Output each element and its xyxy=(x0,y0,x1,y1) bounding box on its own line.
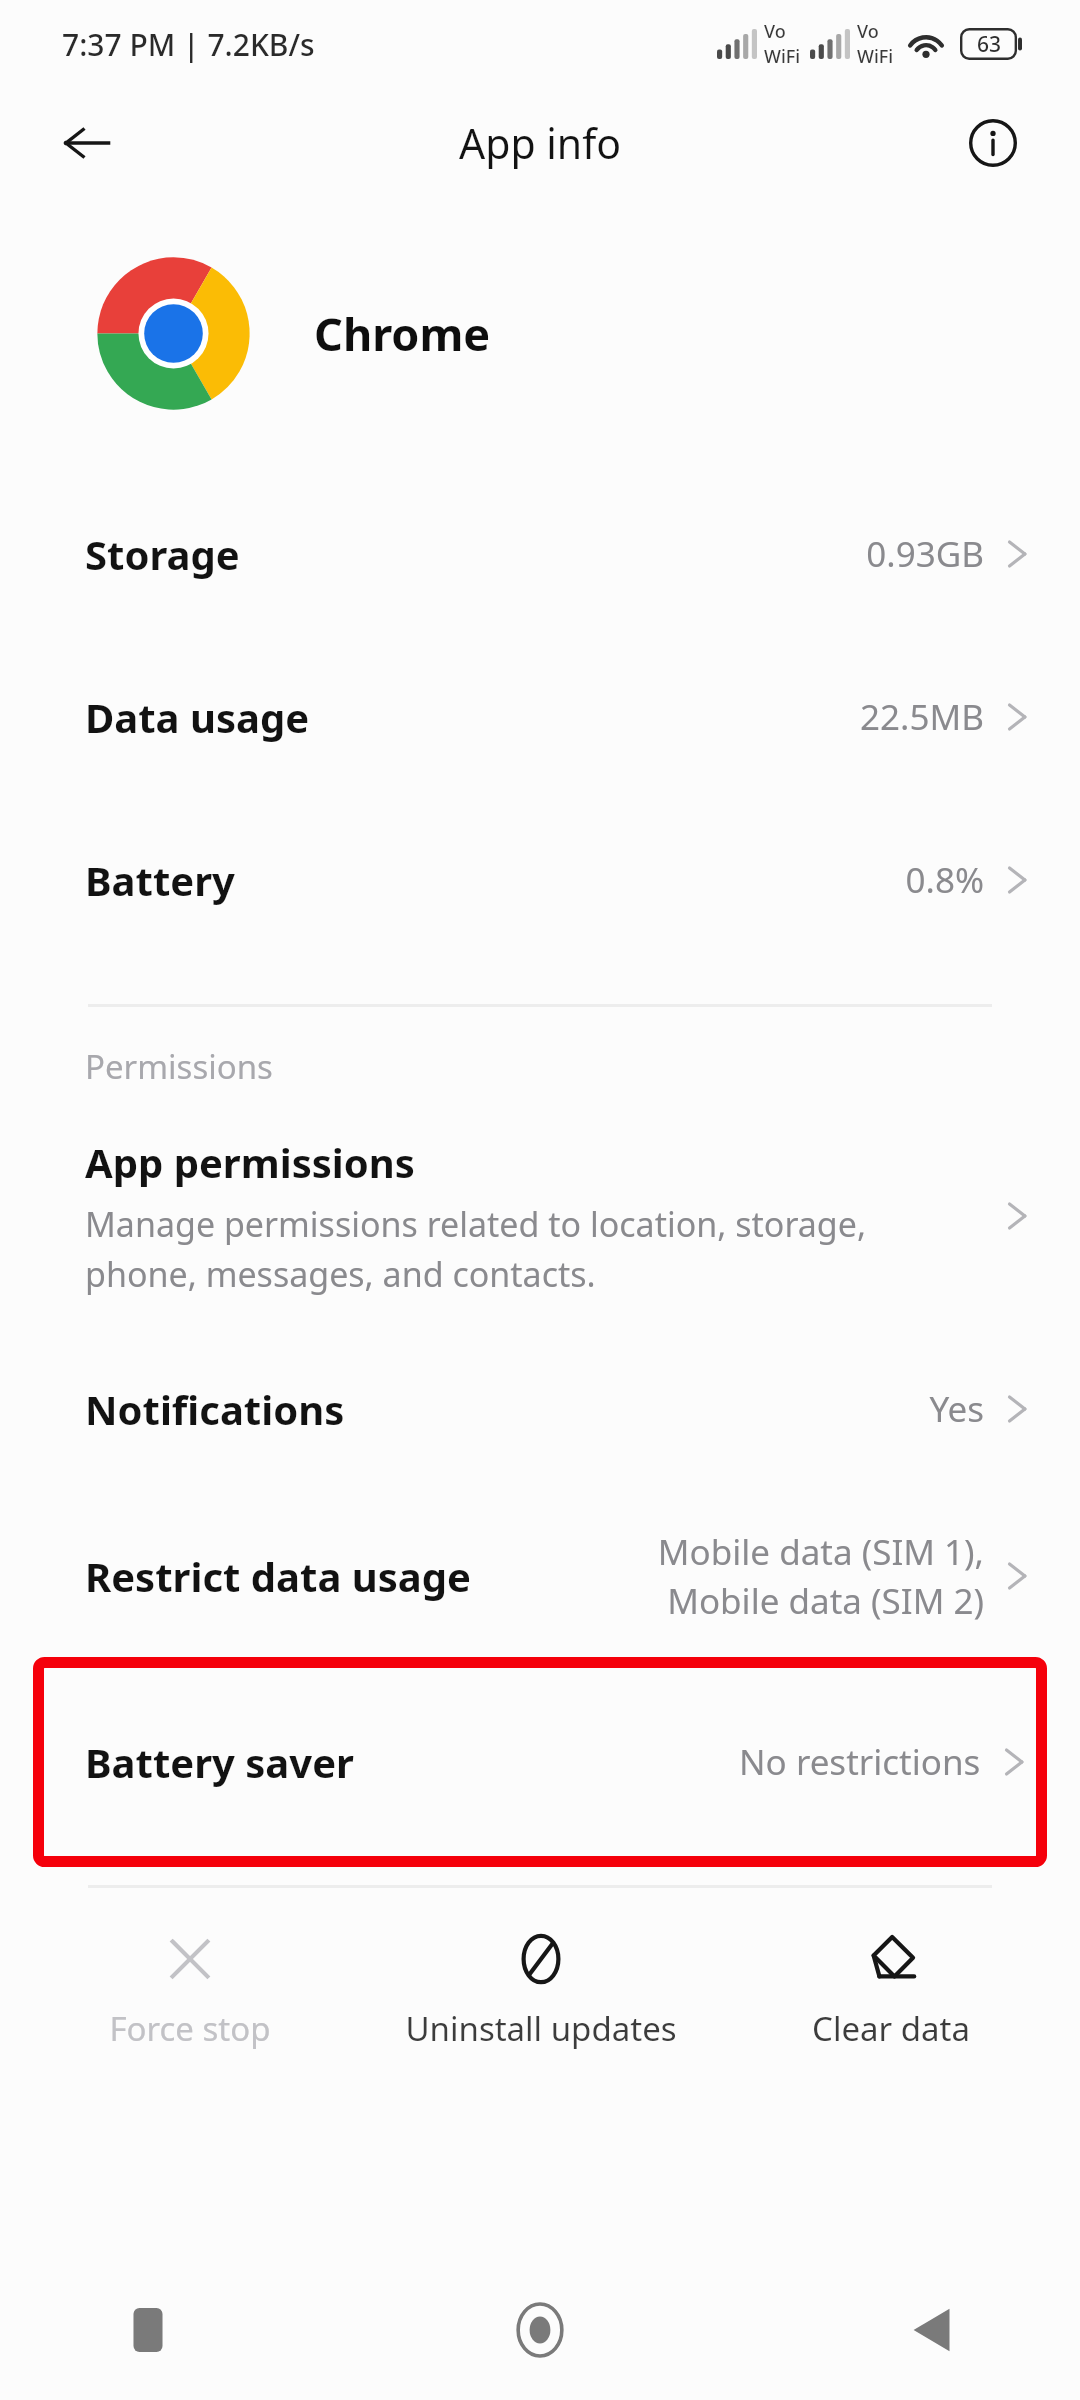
staticText: Clear data xyxy=(812,2006,970,2051)
staticText: Battery saver xyxy=(85,1735,354,1789)
staticText: Data usage xyxy=(85,690,310,744)
button[interactable]: Storage xyxy=(0,472,1080,635)
staticText: Uninstall updates xyxy=(405,2006,677,2051)
button[interactable]: Force stop xyxy=(36,1924,344,2057)
button[interactable]: Uninstall updates xyxy=(344,1924,737,2057)
staticText: Storage xyxy=(85,527,240,581)
staticText: App info xyxy=(459,115,622,171)
button[interactable]: Data usage xyxy=(0,635,1080,798)
button[interactable]: Home xyxy=(492,2282,588,2378)
staticText: 63 xyxy=(977,30,1002,59)
button[interactable]: Battery saver xyxy=(33,1657,1047,1867)
button[interactable]: App details xyxy=(954,104,1032,182)
staticText: Notifications xyxy=(85,1382,345,1436)
staticText: No restrictions xyxy=(739,1738,981,1786)
button[interactable]: Restrict data usage xyxy=(0,1494,1080,1657)
staticText: Manage permissions related to location, … xyxy=(85,1201,867,1297)
staticText: Restrict data usage xyxy=(85,1549,471,1603)
staticText: Vo xyxy=(857,19,879,44)
button[interactable]: Recent apps xyxy=(100,2282,196,2378)
staticText: App permissions xyxy=(85,1135,415,1189)
staticText: Vo xyxy=(764,19,786,44)
staticText: Battery xyxy=(85,853,235,907)
button[interactable]: App permissions xyxy=(0,1119,1080,1307)
button[interactable]: Back xyxy=(884,2282,980,2378)
staticText: 22.5MB xyxy=(860,693,984,741)
staticText: WiFi xyxy=(857,44,894,69)
button[interactable]: Back xyxy=(48,104,126,182)
button[interactable]: Clear data xyxy=(737,1924,1044,2057)
staticText: Force stop xyxy=(109,2006,271,2051)
staticText: WiFi xyxy=(764,44,801,69)
staticText: Mobile data (SIM 1), Mobile data (SIM 2) xyxy=(657,1528,984,1624)
staticText: 7:37 PM | 7.2KB/s xyxy=(62,24,315,65)
button[interactable]: Battery xyxy=(0,798,1080,961)
button[interactable]: Notifications xyxy=(0,1327,1080,1490)
staticText: 0.8% xyxy=(905,856,984,904)
staticText: Chrome xyxy=(314,303,491,364)
staticText: Permissions xyxy=(85,1044,273,1089)
staticText: 0.93GB xyxy=(866,530,984,578)
staticText: Yes xyxy=(929,1385,984,1433)
